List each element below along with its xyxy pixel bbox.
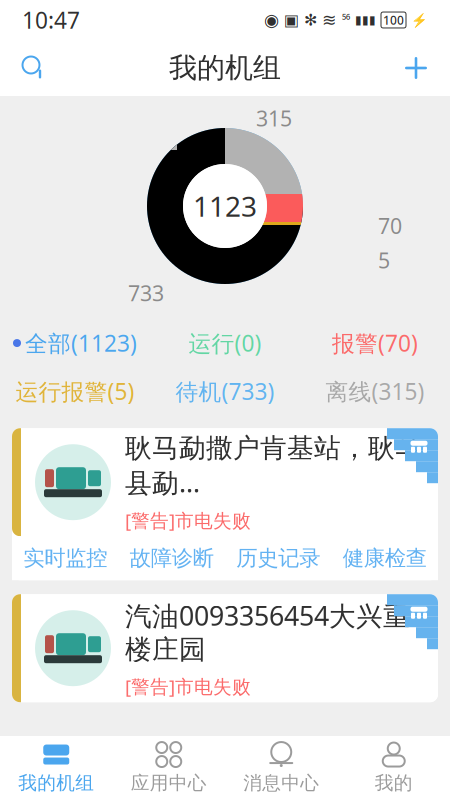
button[interactable]: 汽油0093356454大兴重楼庄园 bbox=[12, 594, 438, 702]
staticText: 我的机组 bbox=[18, 771, 94, 794]
staticText: 离线(315) bbox=[325, 376, 424, 406]
staticText: 运行报警(5) bbox=[15, 376, 134, 406]
staticText: 报警(70) bbox=[332, 328, 418, 358]
staticText: 我的 bbox=[375, 771, 413, 794]
button[interactable]: 我的机组 bbox=[0, 736, 112, 800]
button[interactable]: 健康检查 bbox=[331, 536, 438, 580]
staticText: 全部(1123) bbox=[25, 328, 137, 358]
staticText: [警告]市电失败 bbox=[125, 508, 251, 533]
staticText: 历史记录 bbox=[236, 545, 320, 571]
staticText: 待机(733) bbox=[175, 376, 274, 406]
button[interactable]: 离线(315) bbox=[300, 376, 450, 406]
staticText: 耿马勐撒户肯基站，耿马县勐… bbox=[125, 432, 422, 500]
staticText: 315 bbox=[256, 104, 292, 132]
button[interactable]: 耿马勐撒户肯基站，耿马县勐… bbox=[12, 428, 438, 536]
button[interactable]: 待机(733) bbox=[150, 376, 300, 406]
staticText: ⚡ bbox=[411, 12, 428, 28]
button[interactable]: 消息中心 bbox=[225, 736, 337, 800]
staticText: ✻ bbox=[304, 11, 317, 29]
button[interactable]: 实时监控 bbox=[12, 536, 118, 580]
staticText: [警告]市电失败 bbox=[125, 674, 251, 699]
staticText: 70 bbox=[378, 212, 402, 240]
staticText: 5 bbox=[378, 246, 390, 274]
button[interactable]: 报警(70) bbox=[300, 328, 450, 358]
staticText: 汽油0093356454大兴重楼庄园 bbox=[125, 598, 410, 666]
staticText: 运行(0) bbox=[188, 328, 261, 358]
staticText: 实时监控 bbox=[23, 545, 107, 571]
button[interactable]: 故障诊断 bbox=[118, 536, 225, 580]
staticText: ⁵⁶ bbox=[342, 12, 350, 28]
button[interactable]: 全部(1123) bbox=[0, 328, 150, 358]
staticText: 733 bbox=[128, 279, 164, 307]
staticText: 10:47 bbox=[22, 5, 80, 35]
button[interactable]: 搜索 bbox=[8, 42, 60, 94]
button[interactable]: 添加 bbox=[390, 42, 442, 94]
staticText: ≋ bbox=[322, 10, 337, 30]
button[interactable]: 运行(0) bbox=[150, 328, 300, 358]
staticText: 我的机组 bbox=[169, 51, 281, 85]
staticText: 故障诊断 bbox=[130, 545, 214, 571]
staticText: 应用中心 bbox=[131, 771, 207, 794]
staticText: ▮▮▮ bbox=[355, 13, 376, 27]
staticText: 消息中心 bbox=[243, 771, 319, 794]
button[interactable]: 运行报警(5) bbox=[0, 376, 150, 406]
button[interactable]: 应用中心 bbox=[112, 736, 225, 800]
staticText: 1123 bbox=[193, 187, 257, 225]
button[interactable]: 历史记录 bbox=[225, 536, 331, 580]
button[interactable]: 我的 bbox=[337, 736, 450, 800]
staticText: 100 bbox=[383, 12, 404, 28]
staticText: 健康检查 bbox=[343, 545, 427, 571]
staticText: ▣ bbox=[284, 11, 299, 29]
staticText: ◉ bbox=[264, 10, 279, 30]
